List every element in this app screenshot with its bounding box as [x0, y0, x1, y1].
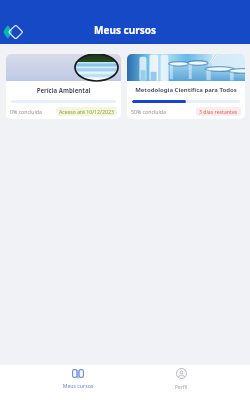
staticText: Metodologia Científica para Todos [131, 86, 241, 94]
staticText: Meus cursos [94, 23, 156, 37]
staticText: Perícia Ambiental [10, 86, 117, 94]
staticText: Acesso até 10/12/2023 [59, 108, 114, 115]
staticText: 0% concluída [10, 108, 42, 115]
other: Perfil [176, 368, 187, 379]
staticText: 3 dias restantes [199, 108, 238, 115]
staticText: Meus cursos [48, 382, 108, 389]
staticText: 50% concluída [131, 108, 166, 115]
button[interactable]: Meus cursos [48, 365, 108, 400]
staticText: Perfil [151, 383, 211, 390]
button[interactable]: Logo [2, 23, 25, 41]
other: Meus cursos [72, 369, 84, 378]
button[interactable]: Perícia Ambiental [6, 54, 121, 119]
button[interactable]: Perfil [151, 365, 211, 400]
button[interactable]: Metodologia Científica para Todos [127, 54, 245, 119]
